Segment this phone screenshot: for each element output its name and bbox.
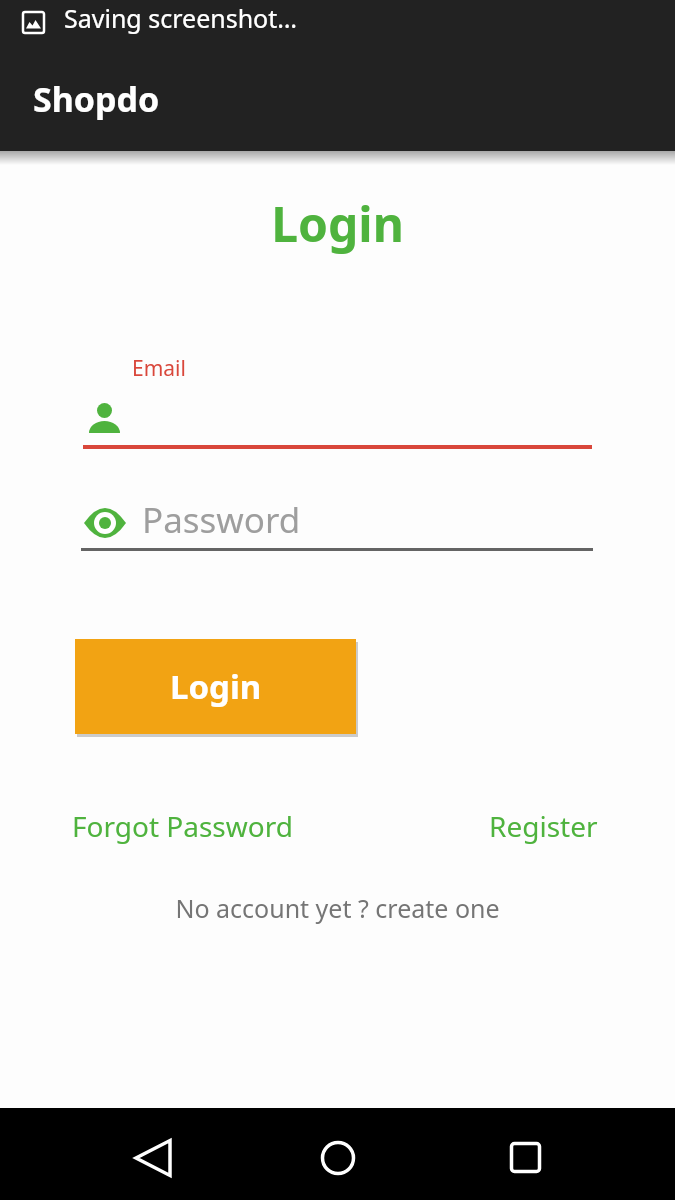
button[interactable] <box>321 1141 355 1175</box>
staticText: Login <box>0 191 675 256</box>
button[interactable]: Register <box>489 807 598 845</box>
button[interactable]: Forgot Password <box>72 807 293 845</box>
staticText: Email <box>132 354 186 383</box>
staticText: No account yet ? create one <box>0 891 675 925</box>
staticText: Saving screenshot… <box>64 1 298 35</box>
button[interactable] <box>134 1139 172 1177</box>
staticText: Shopdo <box>33 76 160 122</box>
button[interactable]: Login <box>75 639 356 734</box>
staticText: Login <box>170 664 262 709</box>
staticText: Password <box>142 496 301 544</box>
button[interactable] <box>510 1142 541 1173</box>
